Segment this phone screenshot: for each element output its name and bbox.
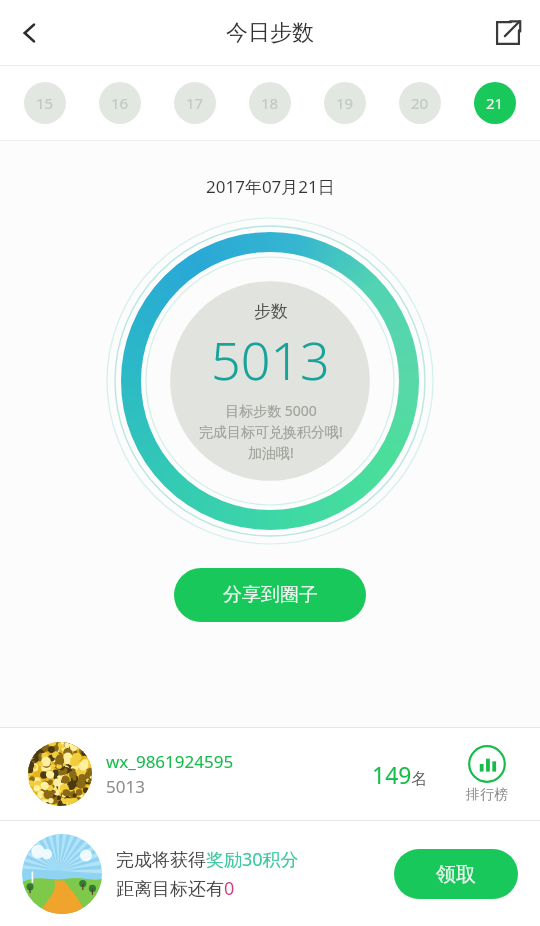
staticText: 18 xyxy=(261,93,279,113)
button[interactable]: wx_9861924595 xyxy=(0,728,540,820)
button[interactable]: 18 xyxy=(249,82,291,124)
staticText: 排行榜 xyxy=(466,786,508,804)
staticText: 完成将获得奖励30积分 xyxy=(116,847,299,872)
staticText: 17 xyxy=(186,93,204,113)
staticText: wx_9861924595 xyxy=(106,750,234,773)
button[interactable]: 19 xyxy=(324,82,366,124)
button[interactable]: 排行榜 xyxy=(462,741,512,808)
button[interactable]: 17 xyxy=(174,82,216,124)
staticText: 领取 xyxy=(436,862,476,887)
staticText: 距离目标还有0 xyxy=(116,876,235,901)
button[interactable]: Back xyxy=(6,9,54,57)
staticText: 15 xyxy=(36,93,54,113)
staticText: 5013 xyxy=(211,324,330,395)
staticText: 20 xyxy=(411,93,429,113)
staticText: 分享到圈子 xyxy=(223,583,318,607)
staticText: 149名 xyxy=(372,759,428,790)
staticText: 步数 xyxy=(254,301,288,322)
button[interactable]: 20 xyxy=(399,82,441,124)
staticText: 5013 xyxy=(106,775,145,798)
staticText: 16 xyxy=(111,93,129,113)
button[interactable]: 21 xyxy=(474,82,516,124)
button[interactable]: 15 xyxy=(24,82,66,124)
staticText: 目标步数 5000 完成目标可兑换积分哦! 加油哦! xyxy=(199,401,343,462)
button[interactable]: Share externally xyxy=(484,9,532,57)
button[interactable]: 16 xyxy=(99,82,141,124)
staticText: 2017年07月21日 xyxy=(206,175,335,198)
staticText: 19 xyxy=(336,93,354,113)
staticText: 21 xyxy=(486,93,504,113)
staticText: 今日步数 xyxy=(226,19,314,47)
button[interactable]: 分享到圈子 xyxy=(174,568,366,622)
button[interactable]: 领取 xyxy=(394,849,518,899)
